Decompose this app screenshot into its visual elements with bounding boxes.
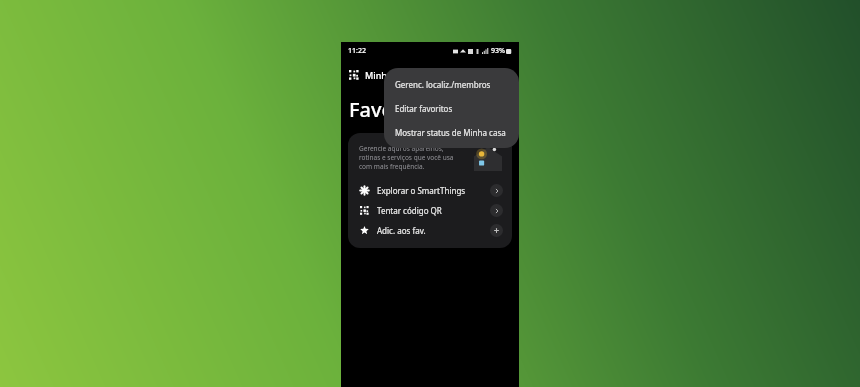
staticText: 11:22 [348, 46, 366, 56]
button[interactable]: Explorar o SmartThings [348, 180, 512, 200]
button[interactable]: Adic. aos fav. [348, 220, 512, 240]
button[interactable]: Gerenc. localiz./membros [384, 72, 519, 96]
button[interactable]: Editar favoritos [384, 96, 519, 120]
other: Abrir [490, 204, 503, 217]
staticText: Mostrar status de Minha casa [395, 127, 506, 138]
staticText: Gerenc. localiz./membros [395, 79, 491, 90]
staticText: Tentar código QR [377, 205, 490, 216]
staticText: Minha casa [365, 69, 414, 81]
other: Adicionar [490, 224, 503, 237]
staticText: Explorar o SmartThings [377, 185, 490, 196]
staticText: Adic. aos fav. [377, 225, 490, 236]
staticText: 93% [491, 46, 505, 56]
button[interactable]: Tentar código QR [348, 200, 512, 220]
button[interactable]: Mostrar status de Minha casa [384, 120, 519, 144]
staticText: Favoritos [349, 96, 438, 123]
staticText: Editar favoritos [395, 103, 453, 114]
other: Abrir [490, 184, 503, 197]
staticText: Gerencie aqui os aparelhos, rotinas e se… [359, 144, 468, 171]
